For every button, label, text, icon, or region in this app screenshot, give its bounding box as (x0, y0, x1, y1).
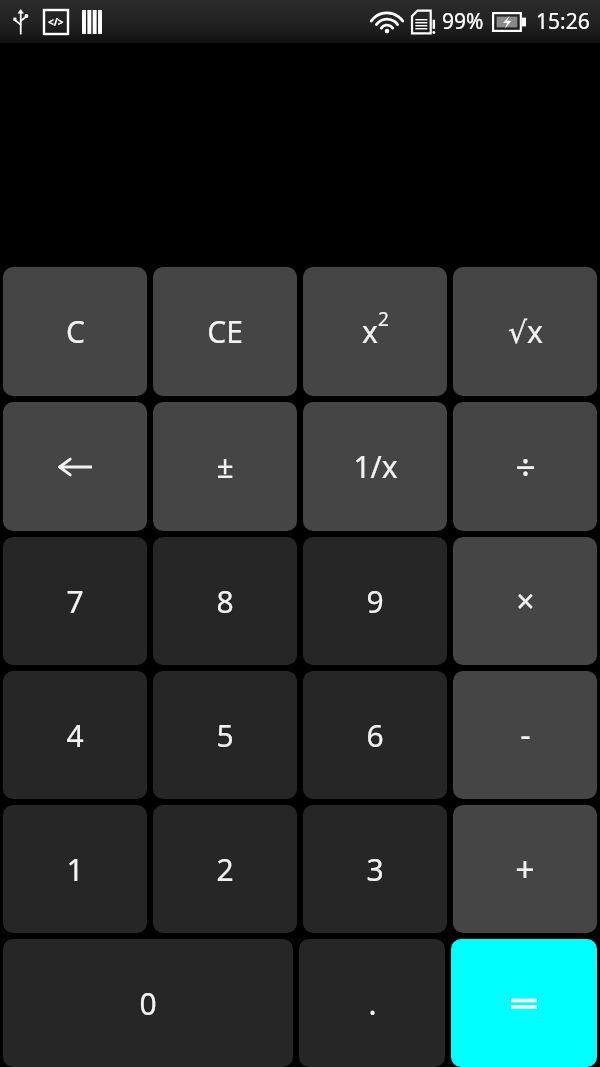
staticText: ± (216, 446, 234, 487)
button[interactable]: + (453, 805, 597, 933)
staticText: 4 (66, 715, 84, 756)
staticText: . (368, 983, 377, 1024)
staticText: 9 (366, 581, 384, 622)
button[interactable]: 9 (303, 537, 447, 665)
staticText: × (516, 579, 535, 623)
staticText: 6 (366, 715, 384, 756)
button[interactable]: 7 (3, 537, 147, 665)
button[interactable]: 8 (153, 537, 297, 665)
staticText: - (520, 713, 531, 757)
button[interactable]: - (453, 671, 597, 799)
button[interactable]: 0 (3, 939, 293, 1067)
staticText: 8 (216, 581, 234, 622)
staticText: 99% (442, 7, 484, 36)
button[interactable]: . (299, 939, 445, 1067)
button[interactable]: C (3, 267, 147, 396)
staticText: 2 (378, 306, 389, 332)
staticText: 7 (66, 581, 84, 622)
button[interactable]: 1/x (303, 402, 447, 531)
staticText: 1/x (353, 446, 398, 487)
button[interactable]: Backspace (3, 402, 147, 531)
staticText: 1 (66, 849, 84, 890)
button[interactable]: square root of x (453, 267, 597, 396)
staticText: 15:26 (536, 7, 590, 36)
button[interactable]: ± (153, 402, 297, 531)
staticText: 5 (216, 715, 234, 756)
staticText: ÷ (515, 442, 536, 491)
button[interactable]: × (453, 537, 597, 665)
button[interactable]: Equals (451, 939, 597, 1067)
button[interactable]: x squared (303, 267, 447, 396)
button[interactable]: 2 (153, 805, 297, 933)
staticText: CE (207, 311, 243, 352)
staticText: 3 (366, 849, 384, 890)
staticText: C (66, 311, 85, 352)
button[interactable]: 4 (3, 671, 147, 799)
staticText: x (362, 311, 378, 352)
staticText: 2 (216, 849, 234, 890)
button[interactable]: 3 (303, 805, 447, 933)
staticText: 0 (139, 983, 157, 1024)
button[interactable]: 1 (3, 805, 147, 933)
button[interactable]: CE (153, 267, 297, 396)
button[interactable]: ÷ (453, 402, 597, 531)
button[interactable]: 6 (303, 671, 447, 799)
staticText: + (515, 846, 535, 892)
staticText: √x (508, 311, 543, 352)
staticText: </> (48, 15, 64, 29)
button[interactable]: 5 (153, 671, 297, 799)
